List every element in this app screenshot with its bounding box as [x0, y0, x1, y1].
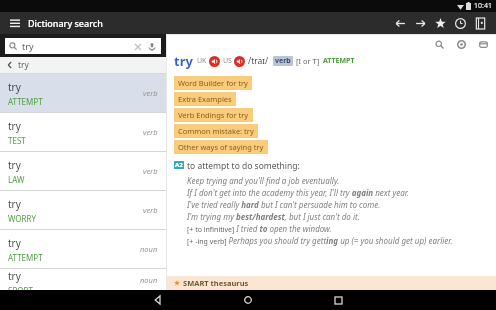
staticText: try	[8, 269, 21, 283]
staticText: [+ -ing verb] Perhaps you should try get…	[187, 235, 453, 246]
staticText: Extra Examples	[178, 94, 232, 104]
staticText: [I or T]	[296, 56, 320, 66]
button[interactable]: SMART thesaurus	[167, 276, 496, 290]
button[interactable]: Open navigation drawer	[8, 15, 105, 31]
staticText: LAW	[8, 174, 25, 185]
staticText: Other ways of saying try	[178, 142, 264, 152]
other: Open navigation drawer	[10, 18, 20, 28]
staticText: Dictionary search	[28, 17, 103, 29]
button[interactable]: Verb Endings for try	[174, 108, 253, 122]
button[interactable]: Dictionaries	[470, 13, 490, 33]
staticText: verb	[143, 166, 158, 176]
staticText: try	[174, 52, 193, 70]
staticText: TEST	[8, 135, 26, 146]
staticText: ATTEMPT	[323, 56, 355, 66]
button[interactable]: Word Builder for try	[174, 76, 252, 90]
staticText: try	[22, 40, 34, 52]
button[interactable]: Notes	[476, 37, 490, 51]
staticText: I'm trying my best/hardest, but I just c…	[187, 211, 360, 222]
staticText: [+ to infinitive] I tried to open the wi…	[187, 223, 332, 234]
button[interactable]: Clear search	[132, 41, 143, 52]
staticText: noun	[140, 244, 158, 254]
button[interactable]: Settings	[454, 37, 468, 51]
staticText: /traɪ/	[248, 55, 269, 67]
staticText: A2	[175, 161, 183, 169]
staticText: If I don't get into the academy this yea…	[187, 187, 409, 198]
button[interactable]: Voice search	[146, 41, 157, 52]
button[interactable]: try	[0, 269, 166, 290]
staticText: Word Builder for try	[178, 78, 248, 88]
button[interactable]: Common mistake: try	[174, 124, 258, 138]
button[interactable]: Home	[203, 290, 293, 310]
staticText: Common mistake: try	[178, 126, 254, 136]
staticText: Verb Endings for try	[178, 110, 249, 120]
button[interactable]: History	[450, 13, 470, 33]
staticText: UK	[197, 56, 207, 66]
staticText: I've tried really hard but I can't persu…	[187, 199, 381, 210]
staticText: WORRY	[8, 213, 37, 224]
staticText: try	[8, 236, 21, 250]
staticText: to attempt to do something:	[187, 160, 300, 172]
staticText: verb	[143, 127, 158, 137]
staticText: try	[8, 119, 21, 133]
staticText: noun	[140, 275, 158, 285]
staticText: verb	[143, 88, 158, 98]
staticText: SMART thesaurus	[183, 278, 249, 288]
button[interactable]: try	[0, 230, 166, 268]
button[interactable]: Other ways of saying try	[174, 140, 268, 154]
staticText: try	[8, 158, 21, 172]
staticText: ATTEMPT	[8, 252, 43, 263]
staticText: ATTEMPT	[8, 96, 43, 107]
button[interactable]: try	[5, 38, 161, 54]
staticText: US	[223, 56, 232, 66]
button[interactable]: Play US pronunciation	[234, 56, 245, 67]
button[interactable]: Favourites	[430, 13, 450, 33]
button[interactable]: try	[0, 113, 166, 151]
staticText: verb	[143, 205, 158, 215]
button[interactable]: Back	[113, 290, 203, 310]
button[interactable]: try	[0, 74, 166, 112]
staticText: try	[8, 197, 21, 211]
staticText: try	[18, 59, 29, 71]
staticText: Keep trying and you'll find a job eventu…	[187, 175, 340, 186]
staticText: try	[8, 80, 21, 94]
button[interactable]: try	[0, 191, 166, 229]
staticText: 10:41	[474, 1, 492, 11]
staticText: verb	[275, 56, 291, 66]
button[interactable]: Search in page	[432, 37, 446, 51]
button[interactable]: Recent apps	[293, 290, 383, 310]
button[interactable]: Play UK pronunciation	[209, 56, 220, 67]
staticText: SPORT	[8, 285, 33, 290]
button[interactable]: Extra Examples	[174, 92, 236, 106]
button[interactable]: try	[0, 57, 166, 73]
button[interactable]: Forward	[410, 13, 430, 33]
button[interactable]: try	[0, 152, 166, 190]
button[interactable]: Back	[390, 13, 410, 33]
